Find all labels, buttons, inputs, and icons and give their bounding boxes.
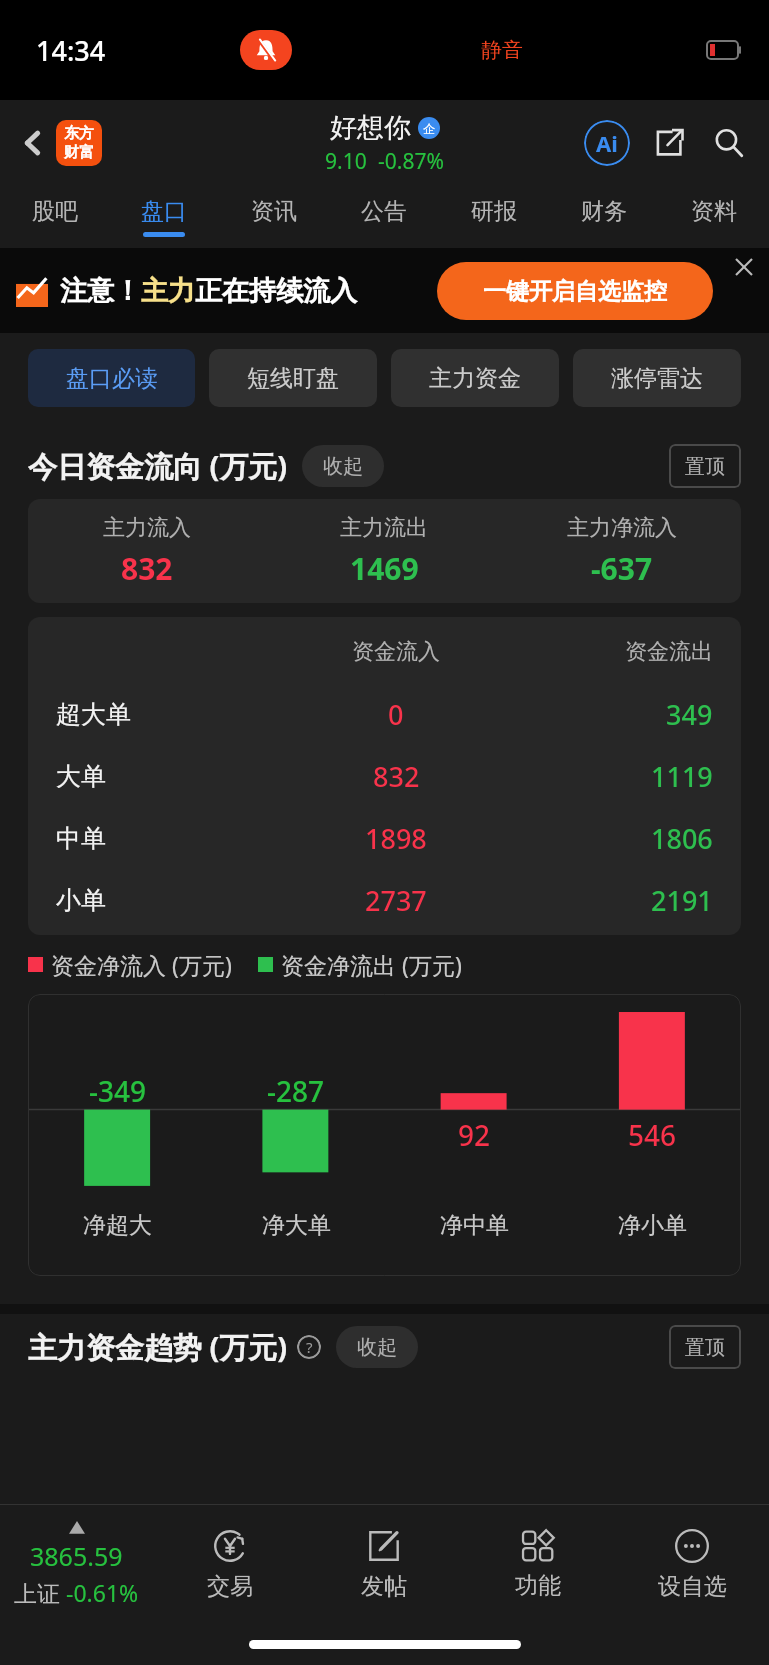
button[interactable]: 发帖 xyxy=(307,1505,461,1623)
button[interactable]: 置顶 xyxy=(669,1325,741,1369)
button[interactable]: 一键开启自选监控 xyxy=(437,262,713,320)
staticText: 14:34 xyxy=(36,32,106,69)
staticText: -637 xyxy=(591,548,653,589)
staticText: 小单 xyxy=(56,885,106,916)
staticText: 资料 xyxy=(691,197,737,226)
staticText: 短线盯盘 xyxy=(247,364,339,393)
staticText: 主力资金趋势 (万元) xyxy=(28,1327,288,1367)
button[interactable]: AI xyxy=(581,117,633,169)
staticText: 置顶 xyxy=(685,1335,725,1360)
staticText: 静音 xyxy=(481,37,523,63)
staticText: 主力 xyxy=(141,274,195,308)
staticText: 公告 xyxy=(361,197,407,226)
staticText: 企 xyxy=(423,121,435,136)
staticText: 盘口 xyxy=(141,197,187,226)
button[interactable]: 大单 xyxy=(28,745,741,807)
staticText: 盘口必读 xyxy=(66,364,158,393)
staticText: 资金流入 xyxy=(352,638,440,666)
staticText: -0.87% xyxy=(378,147,444,176)
staticText: 546 xyxy=(628,1116,677,1154)
staticText: 注意！ xyxy=(60,274,141,308)
staticText: 股吧 xyxy=(32,197,78,226)
staticText: 财务 xyxy=(581,197,627,226)
staticText: 92 xyxy=(458,1116,491,1154)
button[interactable]: 东方财富 xyxy=(56,120,102,166)
button[interactable]: 盘口 xyxy=(109,186,219,248)
staticText: 资讯 xyxy=(251,197,297,226)
staticText: 净中单 xyxy=(440,1211,509,1240)
button[interactable]: 收起 xyxy=(302,445,384,487)
staticText: 功能 xyxy=(515,1571,561,1600)
button[interactable]: 资讯 xyxy=(219,186,329,248)
staticText: 大单 xyxy=(56,761,106,792)
button[interactable]: 涨停雷达 xyxy=(573,349,741,407)
staticText: 一键开启自选监控 xyxy=(483,277,667,306)
button[interactable]: 功能 xyxy=(461,1505,615,1623)
button[interactable]: 公告 xyxy=(329,186,439,248)
staticText: 交易 xyxy=(207,1572,253,1601)
button[interactable]: 主力资金 xyxy=(391,349,559,407)
staticText: 0 xyxy=(388,696,404,733)
staticText: 净大单 xyxy=(262,1211,331,1240)
button[interactable]: 财务 xyxy=(549,186,659,248)
button[interactable]: 收起 xyxy=(336,1326,418,1368)
staticText: 主力净流入 xyxy=(567,514,677,542)
staticText: 置顶 xyxy=(685,454,725,479)
staticText: -0.61% xyxy=(66,1577,139,1608)
staticText: 832 xyxy=(373,758,420,795)
staticText: 发帖 xyxy=(361,1572,407,1601)
button[interactable]: 设自选 xyxy=(615,1505,769,1623)
staticText: 1119 xyxy=(651,758,713,795)
staticText: 9.10 xyxy=(325,147,367,176)
button[interactable]: Search xyxy=(705,119,753,167)
button[interactable]: 短线盯盘 xyxy=(209,349,377,407)
button[interactable]: Back xyxy=(10,120,56,166)
staticText: 资金净流出 (万元) xyxy=(281,949,462,980)
button[interactable]: 置顶 xyxy=(669,444,741,488)
staticText: 1469 xyxy=(350,548,419,589)
staticText: 主力流入 xyxy=(103,514,191,542)
button[interactable]: 研报 xyxy=(439,186,549,248)
staticText: 研报 xyxy=(471,197,517,226)
button[interactable]: 交易 xyxy=(153,1505,307,1623)
button[interactable]: 中单 xyxy=(28,807,741,869)
staticText: Ai xyxy=(596,128,618,158)
staticText: 主力流出 xyxy=(340,514,428,542)
staticText: 上证 xyxy=(14,1577,66,1608)
staticText: ? xyxy=(306,1337,313,1357)
button[interactable]: Close xyxy=(727,250,761,284)
staticText: 2737 xyxy=(365,882,427,919)
staticText: 收起 xyxy=(323,454,363,479)
button[interactable]: Share xyxy=(645,119,693,167)
button[interactable]: 小单 xyxy=(28,869,741,931)
staticText: 正在持续流入 xyxy=(195,274,357,308)
button[interactable]: 3865.59 xyxy=(0,1505,153,1623)
staticText: 1806 xyxy=(651,820,713,857)
staticText: 收起 xyxy=(357,1335,397,1360)
staticText: 832 xyxy=(121,548,173,589)
staticText: 设自选 xyxy=(658,1572,727,1601)
button[interactable]: Help xyxy=(296,1334,322,1360)
staticText: 东方 xyxy=(64,124,94,143)
staticText: 3865.59 xyxy=(30,1539,123,1573)
staticText: 主力资金 xyxy=(429,364,521,393)
button[interactable]: 盘口必读 xyxy=(28,349,195,407)
staticText: -349 xyxy=(89,1072,147,1110)
staticText: 资金净流入 (万元) xyxy=(51,949,232,980)
button[interactable]: 资料 xyxy=(659,186,769,248)
button[interactable]: 股吧 xyxy=(0,186,109,248)
staticText: 好想你 xyxy=(330,111,411,145)
staticText: 超大单 xyxy=(56,699,131,730)
staticText: 净超大 xyxy=(83,1211,152,1240)
staticText: 财富 xyxy=(64,143,94,162)
staticText: 349 xyxy=(666,696,713,733)
staticText: 中单 xyxy=(56,823,106,854)
staticText: 1898 xyxy=(365,820,427,857)
staticText: -287 xyxy=(267,1072,325,1110)
staticText: 净小单 xyxy=(618,1211,687,1240)
staticText: 今日资金流向 (万元) xyxy=(28,446,288,486)
button[interactable]: 超大单 xyxy=(28,683,741,745)
staticText: 涨停雷达 xyxy=(611,364,703,393)
staticText: 2191 xyxy=(651,882,713,919)
staticText: 资金流出 xyxy=(625,638,713,666)
